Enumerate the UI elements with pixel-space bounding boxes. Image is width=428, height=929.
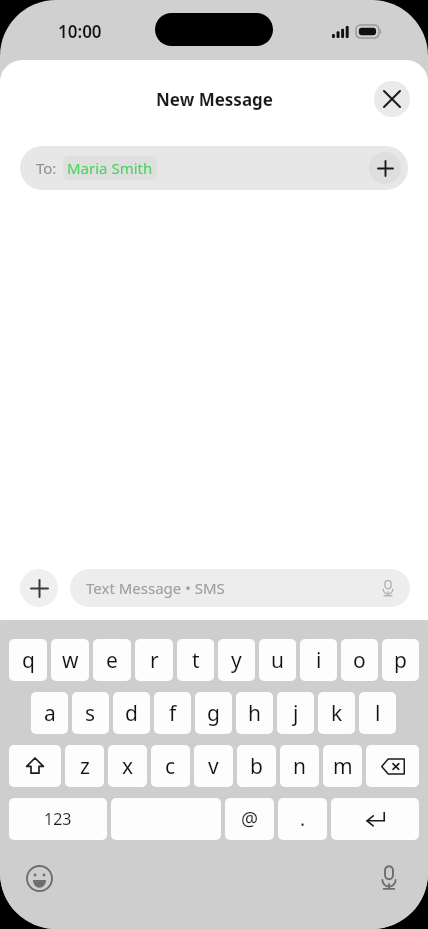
staticText: c (165, 752, 176, 781)
button[interactable]: q (9, 639, 47, 681)
staticText: j (293, 699, 299, 728)
staticText: m (333, 752, 353, 781)
staticText: h (248, 699, 261, 728)
button[interactable]: Backspace (366, 745, 419, 787)
staticText: u (271, 646, 284, 675)
button[interactable]: . (278, 798, 327, 840)
other: Audio message (378, 578, 398, 598)
button[interactable]: Return (331, 798, 419, 840)
button[interactable]: Text Message • SMS (70, 569, 410, 607)
button[interactable]: @ (225, 798, 274, 840)
staticText: w (62, 646, 79, 675)
button[interactable]: b (237, 745, 276, 787)
staticText: @ (241, 806, 259, 832)
button[interactable]: a (31, 692, 68, 734)
button[interactable]: Emoji (22, 861, 56, 895)
staticText: n (293, 752, 306, 781)
staticText: . (300, 806, 306, 832)
staticText: To: (36, 158, 57, 178)
staticText: q (22, 646, 35, 675)
staticText: Maria Smith (67, 158, 153, 178)
staticText: e (106, 646, 118, 675)
button[interactable]: e (93, 639, 131, 681)
button[interactable]: h (236, 692, 273, 734)
button[interactable]: Close (374, 81, 410, 117)
button[interactable]: d (113, 692, 150, 734)
button[interactable]: n (280, 745, 319, 787)
staticText: a (44, 699, 56, 728)
staticText: Text Message • SMS (86, 578, 225, 598)
button[interactable]: i (300, 639, 337, 681)
staticText: 10:00 (58, 20, 102, 43)
staticText: f (169, 699, 177, 728)
staticText: k (331, 699, 343, 728)
button[interactable]: 123 (9, 798, 107, 840)
button[interactable]: o (341, 639, 378, 681)
button[interactable]: y (218, 639, 255, 681)
button[interactable]: k (318, 692, 355, 734)
staticText: l (375, 699, 381, 728)
button[interactable]: Shift (9, 745, 61, 787)
button[interactable]: u (259, 639, 296, 681)
button[interactable]: To: (20, 146, 408, 190)
staticText: b (250, 752, 263, 781)
button[interactable]: p (382, 639, 419, 681)
staticText: g (207, 699, 220, 728)
button[interactable]: g (195, 692, 232, 734)
button[interactable]: s (72, 692, 109, 734)
button[interactable]: Add attachment (20, 569, 58, 607)
staticText: y (231, 646, 242, 675)
button[interactable]: z (65, 745, 104, 787)
button[interactable]: m (323, 745, 362, 787)
staticText: r (150, 646, 159, 675)
button[interactable]: w (51, 639, 89, 681)
staticText: z (80, 752, 90, 781)
staticText: New Message (156, 88, 273, 111)
staticText: i (316, 646, 322, 675)
staticText: d (125, 699, 138, 728)
button[interactable]: t (177, 639, 214, 681)
staticText: v (208, 752, 219, 781)
button[interactable]: f (154, 692, 191, 734)
button[interactable]: v (194, 745, 233, 787)
staticText: 123 (44, 808, 72, 830)
staticText: x (122, 752, 134, 781)
button[interactable]: c (151, 745, 190, 787)
button[interactable]: x (108, 745, 147, 787)
staticText: s (85, 699, 96, 728)
button[interactable]: l (359, 692, 396, 734)
staticText: p (394, 646, 407, 675)
button[interactable]: Add contact (369, 152, 401, 184)
staticText: t (192, 646, 200, 675)
button[interactable]: j (277, 692, 314, 734)
staticText: o (353, 646, 366, 675)
button[interactable]: r (135, 639, 173, 681)
button[interactable]: Dictation (372, 861, 406, 895)
